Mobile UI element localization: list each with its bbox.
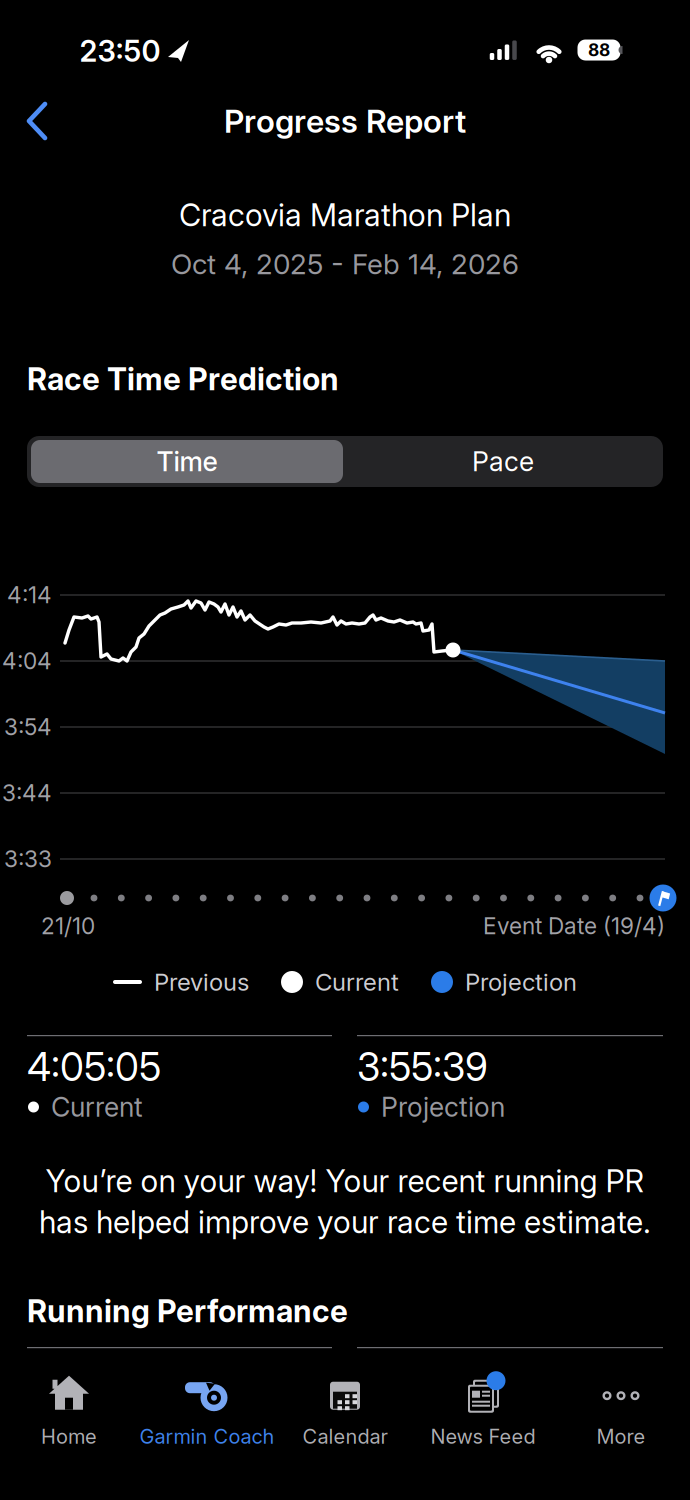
staticText: 3:33 bbox=[4, 846, 52, 872]
staticText: You’re on your way! Your recent running … bbox=[45, 1163, 644, 1199]
staticText: 21/10 bbox=[41, 913, 95, 939]
staticText: Running Performance bbox=[27, 1293, 348, 1329]
button[interactable] bbox=[7, 91, 67, 151]
staticText: Time bbox=[156, 446, 217, 477]
staticText: 4:14 bbox=[7, 582, 52, 608]
staticText: Race Time Prediction bbox=[27, 361, 339, 397]
staticText: 3:54 bbox=[4, 714, 52, 740]
staticText: Current bbox=[315, 968, 399, 996]
staticText: Oct 4, 2025 - Feb 14, 2026 bbox=[171, 247, 519, 280]
button[interactable]: Garmin Coach bbox=[132, 1371, 282, 1451]
button[interactable]: Home bbox=[0, 1371, 144, 1451]
staticText: has helped improve your race time estima… bbox=[39, 1204, 651, 1240]
staticText: Projection bbox=[381, 1091, 505, 1123]
staticText: Previous bbox=[154, 968, 249, 996]
staticText: Current bbox=[51, 1091, 143, 1123]
staticText: Garmin Coach bbox=[139, 1425, 274, 1448]
staticText: Home bbox=[41, 1425, 97, 1448]
staticText: Projection bbox=[465, 968, 577, 996]
staticText: 88 bbox=[588, 40, 610, 60]
staticText: 3:55:39 bbox=[357, 1044, 488, 1090]
button[interactable]: Time bbox=[31, 440, 343, 483]
staticText: News Feed bbox=[430, 1425, 535, 1448]
staticText: More bbox=[596, 1425, 645, 1448]
button[interactable] bbox=[649, 884, 676, 911]
staticText: Cracovia Marathon Plan bbox=[179, 197, 511, 233]
staticText: 3:44 bbox=[2, 780, 52, 806]
button[interactable]: Pace bbox=[347, 440, 659, 483]
staticText: 23:50 bbox=[79, 34, 160, 68]
staticText: Pace bbox=[472, 446, 534, 477]
staticText: Event Date (19/4) bbox=[483, 913, 665, 939]
button[interactable]: Calendar bbox=[270, 1371, 420, 1451]
staticText: 4:05:05 bbox=[27, 1044, 161, 1090]
staticText: Progress Report bbox=[224, 102, 466, 140]
button[interactable]: News Feed bbox=[408, 1371, 558, 1451]
staticText: 4:04 bbox=[2, 648, 52, 674]
button[interactable]: More bbox=[546, 1371, 690, 1451]
staticText: Calendar bbox=[302, 1425, 387, 1448]
